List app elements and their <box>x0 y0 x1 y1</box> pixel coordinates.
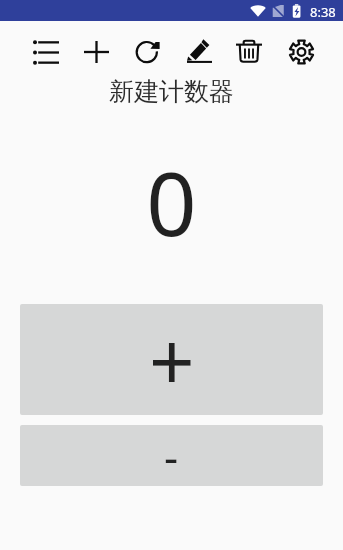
button[interactable]: - <box>20 425 323 486</box>
button[interactable]: List <box>29 35 63 69</box>
staticText: 8:38 <box>310 3 336 21</box>
staticText: + <box>149 305 195 414</box>
button[interactable]: Add <box>79 35 113 69</box>
button[interactable]: Edit <box>182 34 216 68</box>
button[interactable]: Reset <box>130 35 164 69</box>
staticText: - <box>164 426 179 486</box>
button[interactable]: + <box>20 304 323 415</box>
staticText: 0 <box>0 142 343 262</box>
button[interactable]: Settings <box>284 35 318 69</box>
button[interactable]: Delete <box>232 34 266 68</box>
staticText: 新建计数器 <box>0 76 343 107</box>
